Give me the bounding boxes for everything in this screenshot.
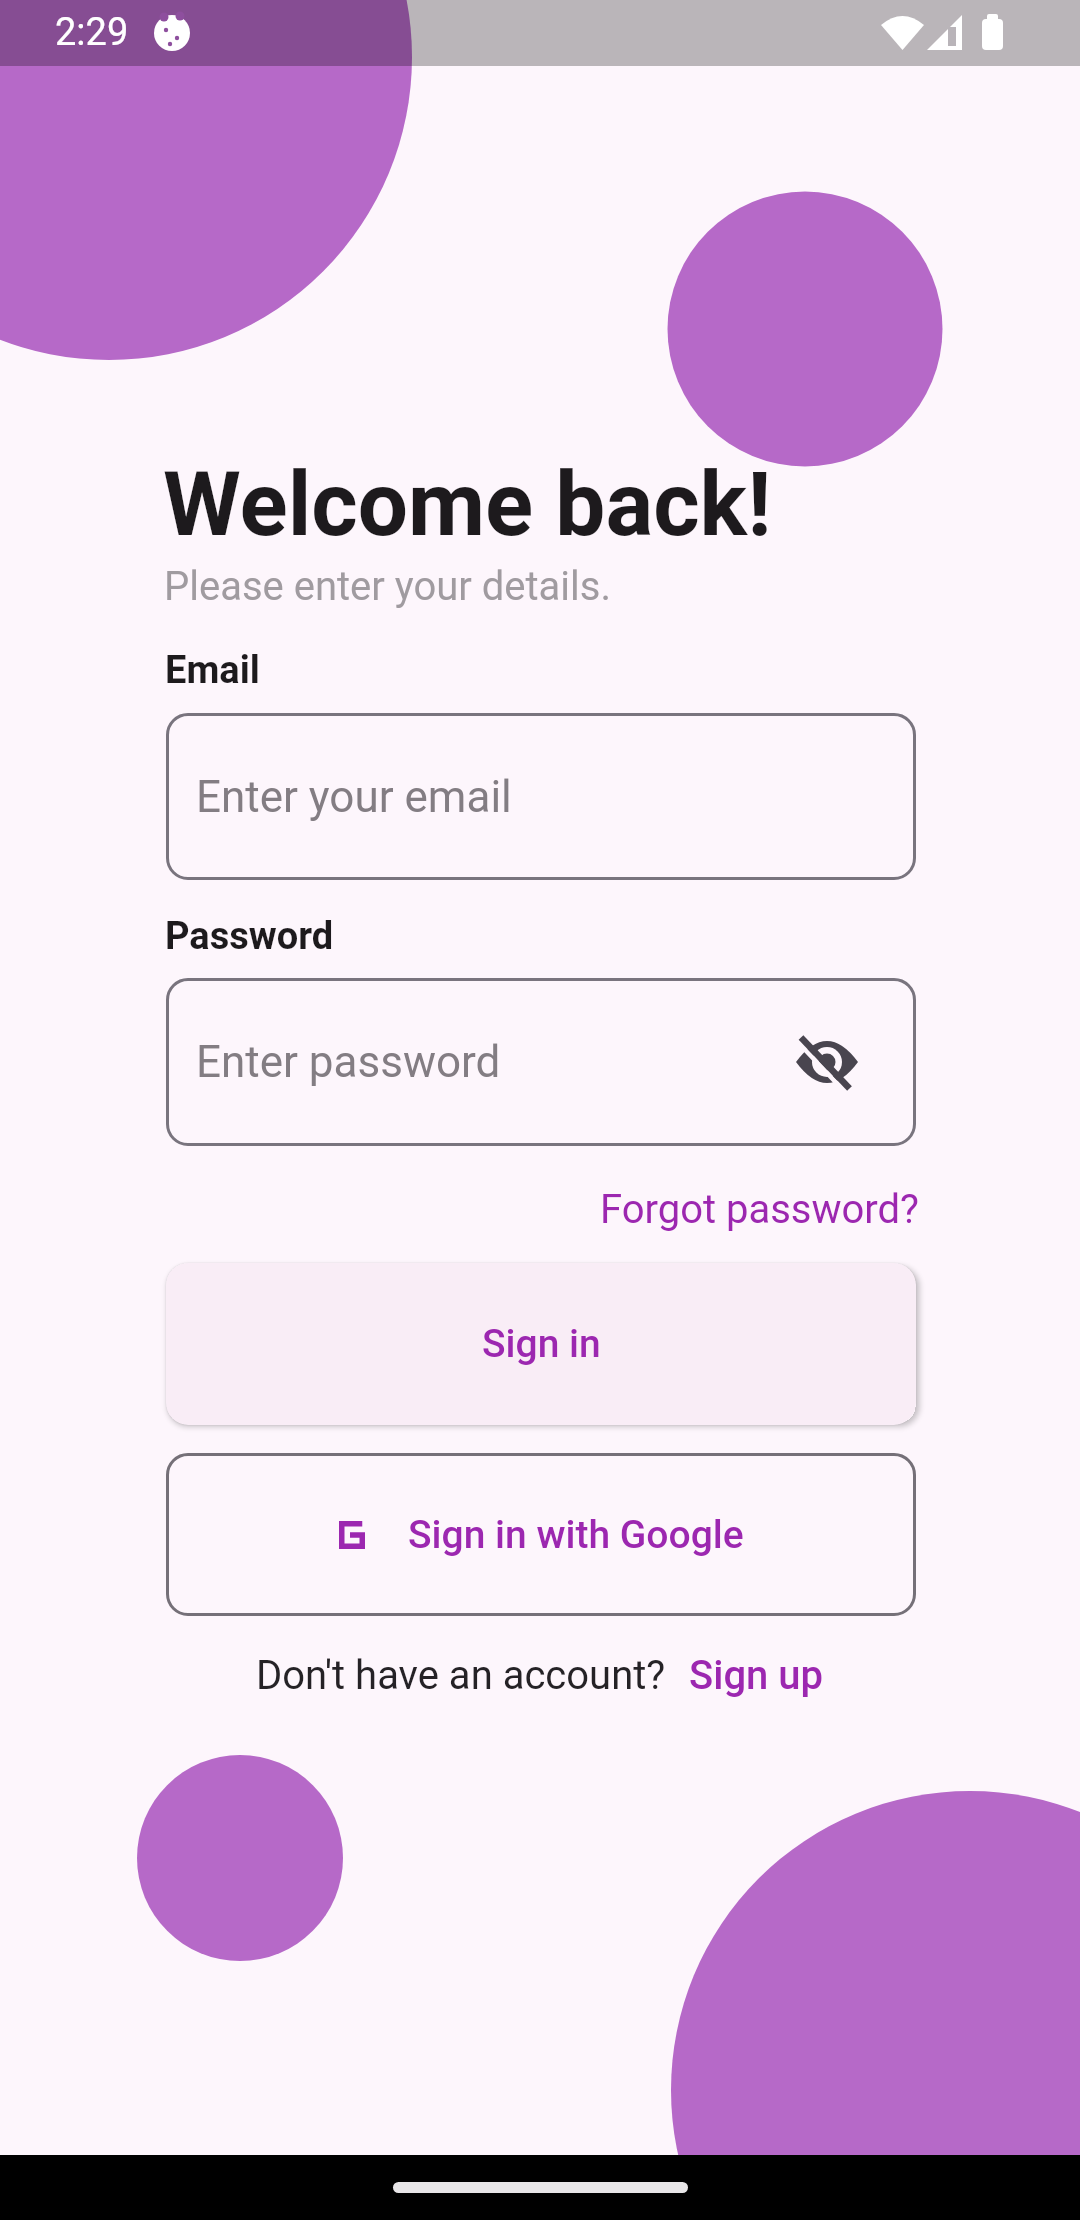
button[interactable]: Sign up (689, 1652, 824, 1699)
button[interactable] (794, 1029, 860, 1095)
staticText: Don't have an account? (256, 1652, 666, 1699)
staticText: Forgot password? (600, 1186, 920, 1233)
button[interactable]: Sign in with Google (166, 1453, 916, 1616)
staticText: Sign in (482, 1321, 601, 1367)
staticText: Email (165, 648, 260, 693)
button[interactable]: Sign in (166, 1263, 916, 1425)
staticText: Sign in with Google (408, 1512, 744, 1558)
button[interactable]: Enter password (166, 978, 916, 1146)
button[interactable]: Enter your email (166, 713, 916, 880)
button[interactable]: Forgot password? (600, 1186, 920, 1233)
staticText: 2:29 (55, 10, 129, 55)
staticText: Password (165, 914, 334, 959)
staticText: Please enter your details. (164, 563, 612, 610)
staticText: Welcome back! (163, 452, 772, 556)
staticText: Enter password (196, 1036, 501, 1088)
staticText: Enter your email (196, 771, 512, 823)
